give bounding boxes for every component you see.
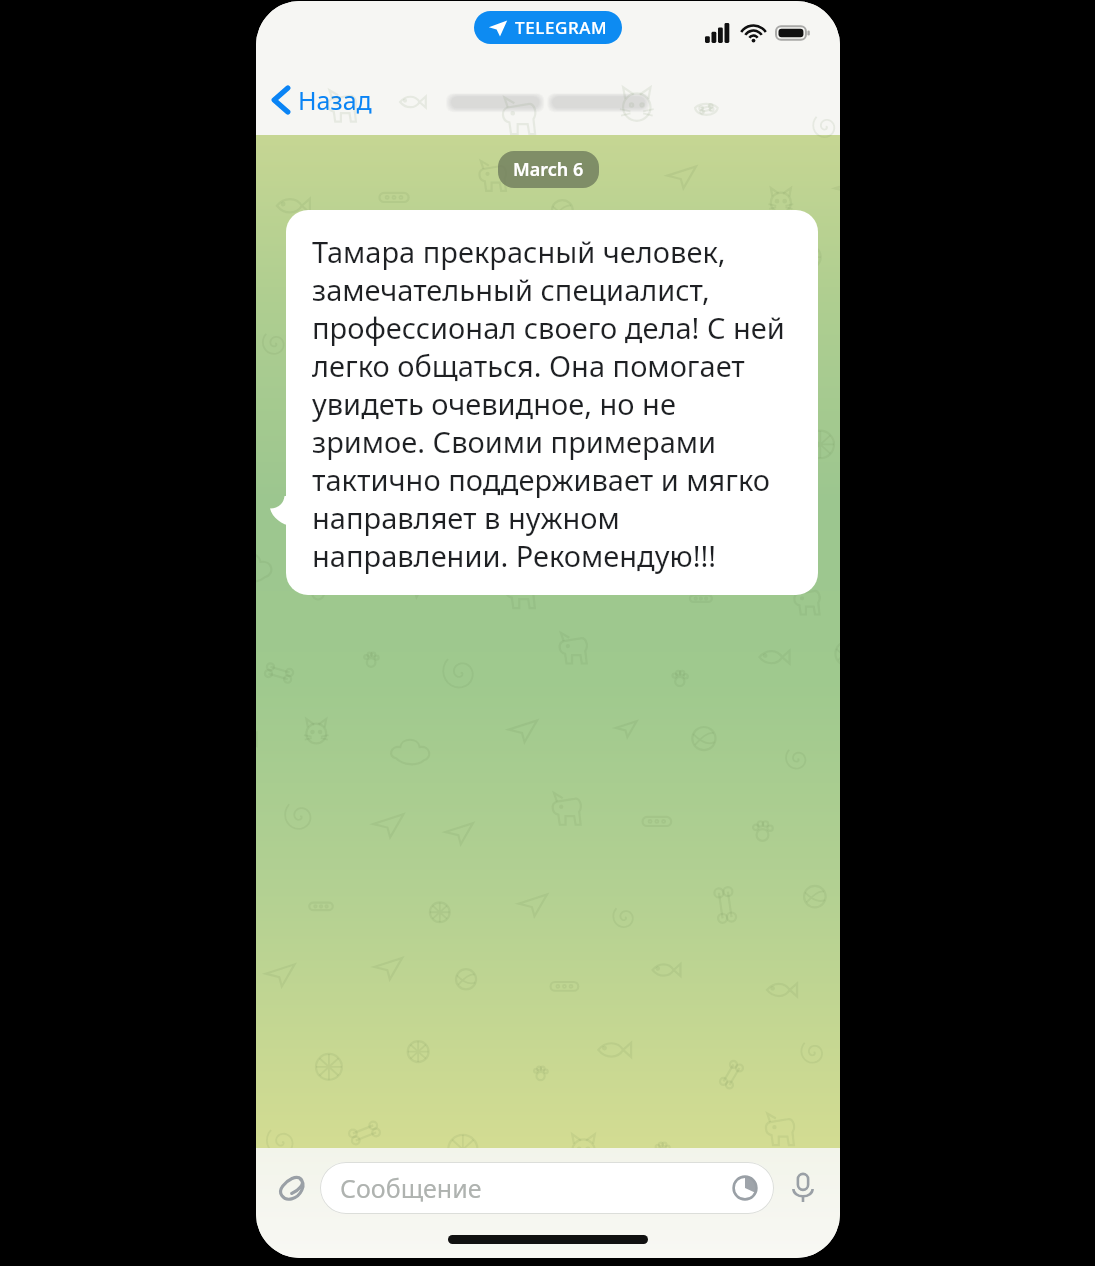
button[interactable]: March 6 — [498, 151, 599, 188]
button[interactable]: TELEGRAM — [474, 11, 622, 44]
button[interactable]: Назад — [256, 77, 384, 123]
button[interactable]: Self-destruct timer — [726, 1169, 764, 1207]
button[interactable]: Тамара прекрасный человек, замечательный… — [286, 210, 818, 595]
staticText: March 6 — [513, 157, 584, 182]
button[interactable]: Attach — [270, 1165, 316, 1211]
staticText: Сообщение — [340, 1171, 482, 1205]
button[interactable]: Record voice message — [780, 1165, 826, 1211]
staticText: Назад — [298, 83, 372, 117]
staticText: TELEGRAM — [515, 16, 608, 39]
staticText: Тамара прекрасный человек, замечательный… — [312, 232, 796, 575]
button[interactable]: Сообщение — [320, 1162, 774, 1214]
